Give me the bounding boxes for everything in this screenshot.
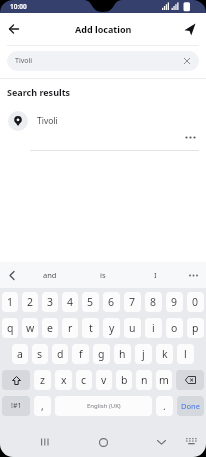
button[interactable]: 3	[42, 292, 58, 312]
staticText: 10:00	[10, 2, 27, 11]
staticText: u	[129, 321, 136, 335]
button[interactable]: v	[96, 370, 112, 390]
staticText: Tivoli	[37, 115, 58, 127]
staticText: c	[81, 373, 87, 387]
button[interactable]: b	[116, 370, 132, 390]
button[interactable]: English (UK)	[55, 396, 152, 416]
staticText: .	[163, 399, 166, 413]
staticText: is	[100, 270, 106, 280]
button[interactable]: k	[156, 344, 173, 364]
button[interactable]: 5	[82, 292, 99, 312]
staticText: n	[141, 373, 148, 387]
staticText: v	[101, 373, 107, 387]
button[interactable]	[182, 433, 200, 451]
staticText: I	[154, 270, 157, 280]
button[interactable]: q	[2, 318, 18, 338]
staticText: o	[171, 321, 178, 335]
staticText: Tivoli	[15, 56, 33, 66]
button[interactable]: s	[32, 344, 48, 364]
staticText: 6	[108, 295, 115, 309]
button[interactable]: 6	[103, 292, 120, 312]
staticText: f	[79, 347, 83, 361]
button[interactable]: y	[103, 318, 120, 338]
staticText: p	[192, 321, 199, 335]
staticText: t	[89, 321, 93, 335]
button[interactable]	[176, 370, 204, 390]
staticText: g	[98, 347, 105, 361]
staticText: Search results	[7, 86, 71, 98]
staticText: 9	[171, 295, 178, 309]
button[interactable]: 2	[22, 292, 38, 312]
button[interactable]: j	[135, 344, 152, 364]
button[interactable]: 9	[166, 292, 183, 312]
staticText: ,	[41, 399, 44, 413]
button[interactable]: 4	[62, 292, 78, 312]
button[interactable]: 8	[145, 292, 162, 312]
button[interactable]: r	[62, 318, 78, 338]
button[interactable]: g	[93, 344, 110, 364]
staticText: and	[43, 270, 57, 280]
staticText: h	[119, 347, 126, 361]
staticText: 7	[129, 295, 136, 309]
button[interactable]: x	[55, 370, 72, 390]
staticText: d	[57, 347, 64, 361]
button[interactable]: !#1	[2, 396, 30, 416]
button[interactable]: a	[12, 344, 28, 364]
button[interactable]	[33, 430, 57, 454]
button[interactable]: l	[177, 344, 194, 364]
button[interactable]: .	[156, 396, 173, 416]
staticText: !#1	[11, 401, 22, 411]
staticText: i	[152, 321, 155, 335]
staticText: Done	[181, 401, 200, 411]
button[interactable]: Tivoli	[7, 51, 199, 71]
button[interactable]	[4, 19, 24, 39]
staticText: w	[26, 321, 35, 335]
staticText: 1	[7, 295, 14, 309]
button[interactable]: e	[42, 318, 58, 338]
staticText: 2	[27, 295, 34, 309]
staticText: a	[17, 347, 23, 361]
button[interactable]: o	[166, 318, 183, 338]
button[interactable]: p	[187, 318, 204, 338]
staticText: k	[162, 347, 168, 361]
button[interactable]	[181, 20, 199, 38]
button[interactable]: i	[145, 318, 162, 338]
staticText: z	[40, 373, 45, 387]
button[interactable]: w	[22, 318, 38, 338]
button[interactable]: 1	[2, 292, 18, 312]
button[interactable]	[91, 430, 115, 454]
staticText: e	[47, 321, 53, 335]
button[interactable]: n	[136, 370, 152, 390]
staticText: 4	[67, 295, 74, 309]
button[interactable]: z	[34, 370, 51, 390]
staticText: x	[61, 373, 67, 387]
button[interactable]: h	[114, 344, 131, 364]
staticText: Add location	[75, 23, 132, 35]
button[interactable]	[4, 267, 20, 283]
button[interactable]: Done	[177, 396, 204, 416]
staticText: 5	[87, 295, 94, 309]
button[interactable]: f	[72, 344, 89, 364]
button[interactable]	[2, 370, 30, 390]
button[interactable]: c	[76, 370, 92, 390]
staticText: j	[142, 347, 145, 361]
staticText: 0	[192, 295, 199, 309]
button[interactable]	[149, 430, 173, 454]
staticText: r	[68, 321, 73, 335]
button[interactable]: ,	[34, 396, 51, 416]
staticText: q	[7, 321, 14, 335]
button[interactable]: 0	[187, 292, 204, 312]
staticText: s	[37, 347, 43, 361]
button[interactable]: t	[82, 318, 99, 338]
staticText: y	[109, 321, 115, 335]
staticText: 8	[150, 295, 157, 309]
button[interactable]: u	[124, 318, 141, 338]
staticText: 3	[47, 295, 54, 309]
button[interactable]: Tivoli	[8, 111, 206, 131]
staticText: b	[121, 373, 128, 387]
button[interactable]: m	[156, 370, 172, 390]
staticText: m	[159, 373, 169, 387]
button[interactable]: d	[52, 344, 68, 364]
staticText: l	[184, 347, 187, 361]
button[interactable]: 7	[124, 292, 141, 312]
